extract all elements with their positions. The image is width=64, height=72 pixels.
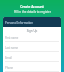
staticText: Fill in the details to register xyxy=(14,10,51,14)
staticText: Create Account xyxy=(20,5,44,9)
button[interactable]: Phone xyxy=(5,66,59,72)
staticText: Personal Information xyxy=(5,21,34,25)
button[interactable]: Last name xyxy=(5,46,59,56)
button[interactable]: Email xyxy=(5,56,59,66)
staticText: First name xyxy=(5,36,19,40)
staticText: Sign Up xyxy=(5,29,59,33)
staticText: Phone xyxy=(5,66,14,70)
staticText: Email xyxy=(5,56,12,60)
button[interactable]: First name xyxy=(5,36,59,46)
button[interactable]: Personal Information xyxy=(3,17,61,27)
staticText: Last name xyxy=(5,46,19,50)
